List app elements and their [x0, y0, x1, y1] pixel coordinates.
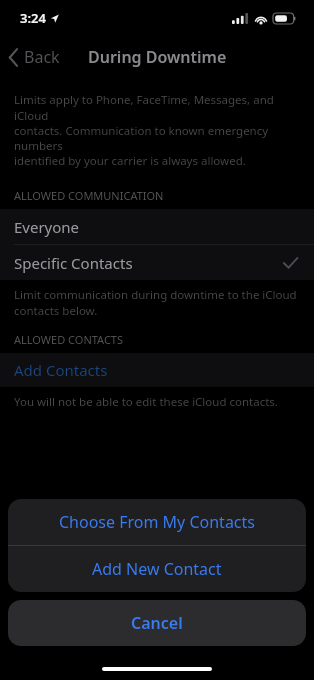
button[interactable]: Specific Contacts: [0, 245, 314, 280]
button[interactable]: Add New Contact: [8, 546, 306, 592]
staticText: During Downtime: [88, 46, 227, 68]
staticText: Add Contacts: [14, 360, 108, 380]
staticText: Specific Contacts: [14, 253, 133, 273]
staticText: ALLOWED COMMUNICATION: [14, 188, 164, 203]
staticText: 3:24: [20, 9, 46, 27]
button[interactable]: Back: [0, 40, 70, 74]
staticText: You will not be able to edit these iClou…: [14, 394, 278, 410]
button[interactable]: Everyone: [0, 209, 314, 244]
staticText: ALLOWED CONTACTS: [14, 332, 123, 347]
staticText: Choose From My Contacts: [59, 511, 255, 533]
staticText: Add New Contact: [92, 558, 222, 580]
staticText: Back: [24, 46, 60, 68]
button[interactable]: Cancel: [8, 600, 306, 646]
button[interactable]: Add Contacts: [0, 353, 314, 387]
staticText: Everyone: [14, 217, 80, 237]
staticText: Limits apply to Phone, FaceTime, Message…: [14, 92, 300, 168]
staticText: Cancel: [131, 612, 183, 634]
button[interactable]: Choose From My Contacts: [8, 499, 306, 545]
staticText: Limit communication during downtime to t…: [14, 287, 297, 318]
